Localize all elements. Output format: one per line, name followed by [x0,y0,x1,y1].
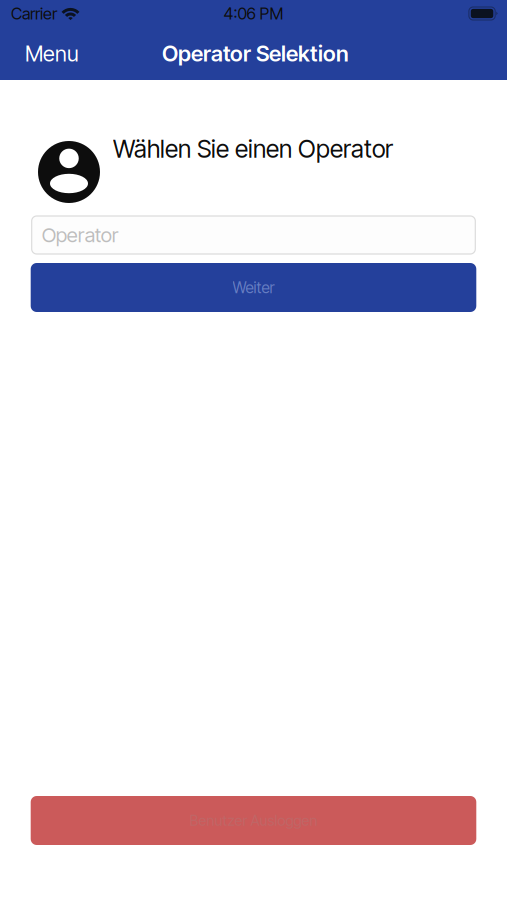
staticText: Operator Selektion [162,40,349,67]
staticText: Benutzer Ausloggen [189,812,317,829]
staticText: Menu [25,40,79,67]
staticText: Weiter [232,278,274,297]
button[interactable]: Benutzer Ausloggen [31,796,476,845]
button[interactable]: Weiter [31,263,476,312]
button[interactable]: Operator [32,216,475,254]
button[interactable]: Menu [14,31,90,76]
staticText: Carrier [11,4,57,23]
staticText: Operator [42,223,119,247]
staticText: 4:06 PM [223,4,283,23]
staticText: Wählen Sie einen Operator [113,134,393,164]
